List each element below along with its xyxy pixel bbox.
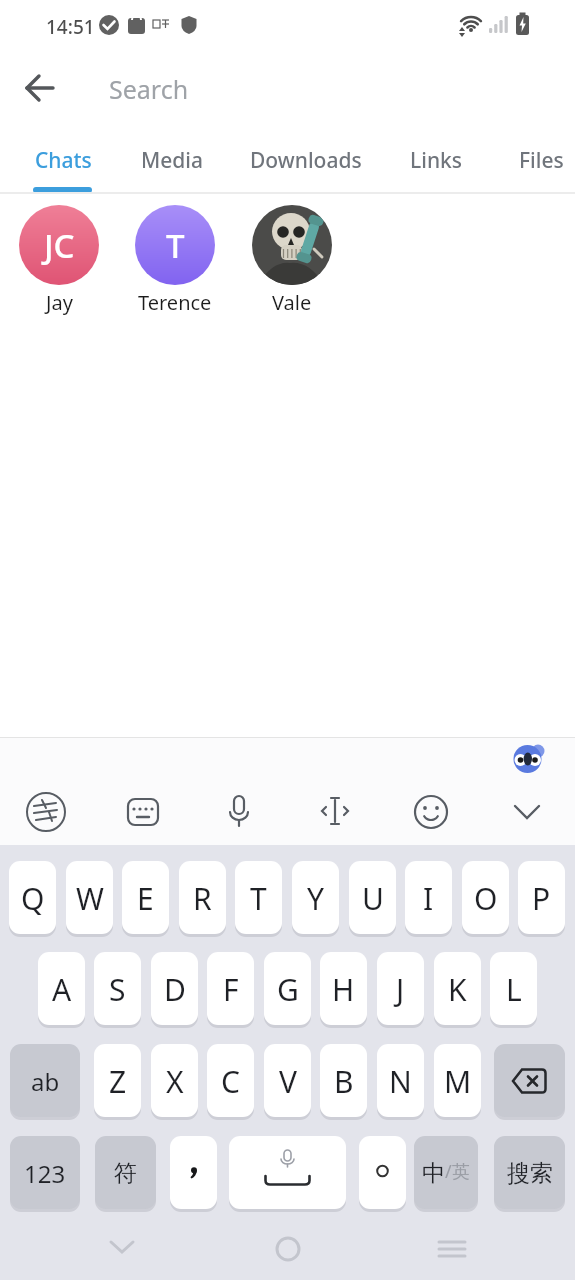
staticText: 123 <box>24 1157 66 1190</box>
staticText: Terence <box>138 289 212 316</box>
button[interactable]: I <box>405 861 452 935</box>
button[interactable]: C <box>207 1044 254 1118</box>
staticText: Y <box>307 878 324 919</box>
staticText: R <box>193 878 212 919</box>
button[interactable]: P <box>518 861 565 935</box>
button[interactable] <box>359 1136 406 1210</box>
staticText: 14:51 <box>46 14 95 40</box>
staticText: N <box>389 1061 412 1102</box>
button[interactable]: Links <box>400 137 472 183</box>
button[interactable]: ab <box>10 1044 80 1118</box>
button[interactable] <box>503 788 551 836</box>
button[interactable]: L <box>490 952 537 1026</box>
button[interactable]: S <box>94 952 141 1026</box>
button[interactable]: Y <box>292 861 339 935</box>
button[interactable]: Downloads <box>240 137 372 183</box>
button[interactable]: Z <box>94 1044 141 1118</box>
button[interactable] <box>16 64 64 112</box>
button[interactable]: 123 <box>10 1136 80 1210</box>
staticText: Links <box>410 146 462 175</box>
button[interactable]: G <box>264 952 311 1026</box>
button[interactable]: T <box>235 861 282 935</box>
button[interactable]: X <box>151 1044 198 1118</box>
staticText: F <box>223 969 239 1010</box>
button[interactable]: D <box>151 952 198 1026</box>
button[interactable]: H <box>320 952 367 1026</box>
button[interactable]: K <box>434 952 481 1026</box>
staticText: L <box>506 969 522 1010</box>
staticText: C <box>221 1061 240 1102</box>
button[interactable]: Files <box>509 137 574 183</box>
staticText: B <box>334 1061 354 1102</box>
button[interactable] <box>428 1201 476 1249</box>
staticText: 搜索 <box>507 1159 553 1188</box>
button[interactable]: 符 <box>95 1136 156 1210</box>
button[interactable] <box>264 1201 312 1249</box>
staticText: I <box>423 878 434 919</box>
staticText: E <box>137 878 154 919</box>
button[interactable] <box>494 1044 565 1118</box>
staticText: JC <box>44 223 75 268</box>
staticText: Media <box>141 146 204 175</box>
button[interactable]: M <box>434 1044 481 1118</box>
staticText: U <box>362 878 384 919</box>
button[interactable] <box>215 788 263 836</box>
button[interactable]: E <box>122 861 169 935</box>
button[interactable] <box>170 1136 217 1210</box>
staticText: K <box>448 969 467 1010</box>
staticText: Z <box>109 1061 127 1102</box>
staticText: Jay <box>46 289 73 316</box>
button[interactable]: V <box>264 1044 311 1118</box>
button[interactable] <box>229 1136 346 1210</box>
button[interactable]: W <box>66 861 113 935</box>
button[interactable]: F <box>207 952 254 1026</box>
staticText: G <box>277 969 299 1010</box>
staticText: 符 <box>114 1159 137 1188</box>
button[interactable]: Media <box>131 137 214 183</box>
staticText: T <box>250 878 267 919</box>
button[interactable]: O <box>462 861 509 935</box>
button[interactable] <box>98 1201 146 1249</box>
button[interactable]: JC <box>19 205 99 316</box>
button[interactable]: J <box>377 952 424 1026</box>
button[interactable] <box>119 788 167 836</box>
staticText: P <box>532 878 551 919</box>
staticText: Files <box>519 146 564 175</box>
staticText: Downloads <box>250 146 362 175</box>
button[interactable]: B <box>320 1044 367 1118</box>
button[interactable] <box>22 788 70 836</box>
staticText: W <box>76 878 104 919</box>
button[interactable] <box>407 788 455 836</box>
staticText: O <box>474 878 498 919</box>
button[interactable] <box>311 788 359 836</box>
staticText: H <box>332 969 355 1010</box>
staticText: J <box>396 969 405 1010</box>
button[interactable]: Search <box>95 60 555 118</box>
staticText: S <box>109 969 126 1010</box>
button[interactable]: Q <box>9 861 56 935</box>
staticText: V <box>279 1061 297 1102</box>
button[interactable]: 中 <box>414 1136 478 1210</box>
button[interactable]: Chats <box>25 137 102 183</box>
staticText: D <box>164 969 186 1010</box>
staticText: 中 <box>422 1159 445 1188</box>
button[interactable]: R <box>179 861 226 935</box>
staticText: Vale <box>272 289 312 316</box>
staticText: X <box>166 1061 184 1102</box>
staticText: Search <box>109 72 189 106</box>
button[interactable]: 搜索 <box>494 1136 565 1210</box>
staticText: Q <box>21 878 45 919</box>
button[interactable]: Vale <box>252 205 332 316</box>
staticText: A <box>52 969 72 1010</box>
staticText: T <box>166 223 185 268</box>
button[interactable]: A <box>38 952 85 1026</box>
button[interactable]: U <box>349 861 396 935</box>
staticText: Chats <box>35 146 92 175</box>
button[interactable]: T <box>135 205 215 316</box>
button[interactable]: N <box>377 1044 424 1118</box>
staticText: ab <box>31 1065 60 1098</box>
staticText: M <box>444 1061 472 1102</box>
staticText: /英 <box>445 1159 470 1184</box>
